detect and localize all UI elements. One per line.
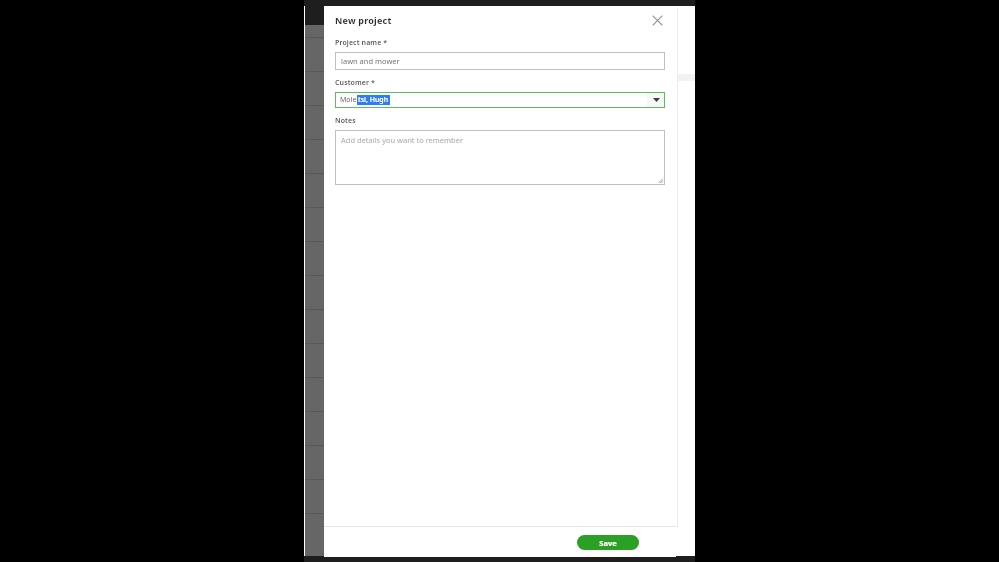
button[interactable]: Save: [577, 535, 639, 550]
button[interactable]: lawn and mower: [335, 52, 665, 70]
staticText: Notes: [335, 116, 356, 126]
staticText: New project: [335, 14, 392, 26]
staticText: Save: [599, 538, 617, 548]
staticText: lawn and mower: [341, 56, 400, 66]
staticText: Project name *: [335, 38, 388, 48]
staticText: Customer *: [335, 78, 376, 88]
button[interactable]: Mole: [335, 92, 665, 108]
button[interactable]: Add details you want to remember: [335, 130, 665, 185]
staticText: Mole: [340, 95, 357, 105]
staticText: tsi, Hugh: [358, 95, 389, 105]
button[interactable]: Open customer list: [647, 92, 665, 108]
button[interactable]: Close: [646, 9, 668, 31]
staticText: Add details you want to remember: [341, 135, 464, 145]
